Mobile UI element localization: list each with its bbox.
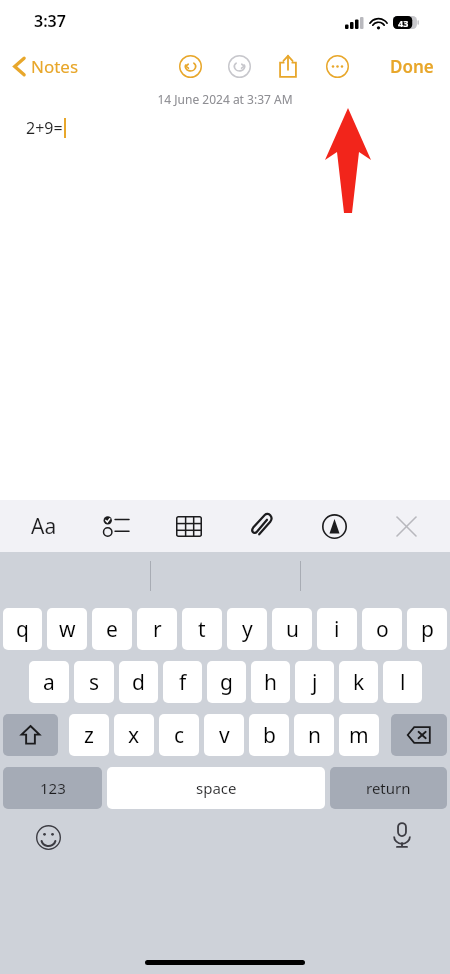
staticText: 3:37: [34, 10, 66, 32]
button[interactable]: x: [114, 714, 154, 756]
button[interactable]: t: [182, 608, 222, 650]
button[interactable]: Markup: [312, 504, 356, 548]
staticText: k: [353, 668, 365, 697]
staticText: d: [132, 668, 145, 697]
button[interactable]: w: [47, 608, 87, 650]
staticText: v: [219, 721, 230, 750]
staticText: a: [43, 668, 55, 697]
button[interactable]: Emoji: [32, 821, 64, 853]
button[interactable]: z: [69, 714, 109, 756]
staticText: l: [400, 668, 406, 697]
button[interactable]: k: [339, 661, 378, 703]
button[interactable]: n: [294, 714, 334, 756]
button[interactable]: j: [295, 661, 334, 703]
button[interactable]: Attach: [239, 504, 283, 548]
button[interactable]: Table: [167, 504, 211, 548]
staticText: p: [421, 615, 434, 644]
button[interactable]: c: [159, 714, 199, 756]
button[interactable]: q: [3, 608, 42, 650]
staticText: Done: [390, 55, 434, 78]
button[interactable]: p: [407, 608, 447, 650]
button[interactable]: Dictation: [386, 819, 418, 851]
button[interactable]: o: [362, 608, 402, 650]
button[interactable]: y: [227, 608, 267, 650]
button[interactable]: Done: [384, 49, 440, 84]
staticText: s: [89, 668, 100, 697]
staticText: t: [198, 615, 206, 644]
staticText: 43: [398, 17, 409, 29]
staticText: j: [312, 668, 318, 697]
button[interactable]: Undo: [172, 48, 208, 84]
staticText: 2+9=: [26, 117, 63, 139]
staticText: i: [334, 615, 340, 644]
button[interactable]: d: [119, 661, 158, 703]
button[interactable]: space: [107, 767, 325, 809]
button[interactable]: Redo: [221, 48, 257, 84]
button[interactable]: e: [92, 608, 132, 650]
staticText: m: [349, 721, 369, 750]
staticText: space: [196, 778, 237, 798]
button[interactable]: f: [163, 661, 202, 703]
button[interactable]: Backspace: [391, 714, 447, 756]
staticText: r: [153, 615, 162, 644]
button[interactable]: v: [204, 714, 244, 756]
button[interactable]: h: [251, 661, 290, 703]
staticText: z: [84, 721, 94, 750]
staticText: Aa: [31, 512, 57, 541]
staticText: b: [263, 721, 276, 750]
button[interactable]: g: [207, 661, 246, 703]
button[interactable]: 123: [3, 767, 102, 809]
staticText: Notes: [31, 55, 79, 78]
button[interactable]: Format: [22, 504, 66, 548]
staticText: u: [286, 615, 299, 644]
staticText: x: [128, 721, 140, 750]
staticText: c: [174, 721, 185, 750]
button[interactable]: l: [383, 661, 422, 703]
staticText: y: [242, 615, 253, 644]
button[interactable]: Notes: [10, 49, 83, 84]
button[interactable]: r: [137, 608, 177, 650]
staticText: g: [220, 668, 233, 697]
button[interactable]: u: [272, 608, 312, 650]
staticText: q: [16, 615, 29, 644]
button[interactable]: b: [249, 714, 289, 756]
staticText: f: [179, 668, 187, 697]
button[interactable]: a: [29, 661, 69, 703]
button[interactable]: s: [74, 661, 114, 703]
button[interactable]: Shift: [3, 714, 58, 756]
button[interactable]: More options: [319, 48, 355, 84]
button[interactable]: Checklist: [94, 504, 138, 548]
staticText: 123: [40, 778, 66, 798]
button[interactable]: i: [317, 608, 357, 650]
staticText: h: [264, 668, 277, 697]
button[interactable]: m: [339, 714, 379, 756]
button[interactable]: return: [330, 767, 447, 809]
staticText: o: [376, 615, 389, 644]
staticText: w: [59, 615, 76, 644]
staticText: return: [366, 778, 411, 798]
staticText: e: [106, 615, 118, 644]
button[interactable]: Close keyboard: [384, 504, 428, 548]
staticText: 14 June 2024 at 3:37 AM: [157, 91, 293, 107]
button[interactable]: Share: [270, 48, 306, 84]
staticText: n: [308, 721, 321, 750]
